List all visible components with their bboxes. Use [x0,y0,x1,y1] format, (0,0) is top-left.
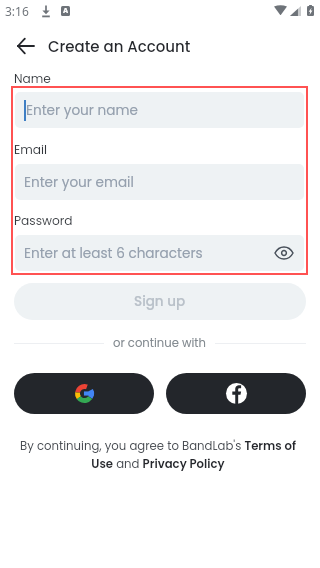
button[interactable]: Show password [270,239,298,267]
staticText: Enter your email [24,173,134,192]
staticText: Password [14,212,73,229]
button[interactable]: Continue with Facebook [166,373,306,414]
staticText: By continuing, you agree to BandLab's Te… [19,438,297,473]
button[interactable]: Sign up [14,283,306,320]
staticText: Name [14,70,51,87]
button[interactable]: Enter your email [15,164,304,200]
staticText: A [63,6,69,16]
staticText: Create an Account [48,36,191,57]
staticText: 3:16 [5,3,29,19]
staticText: Enter at least 6 characters [24,244,203,263]
staticText: Enter your name [26,101,138,120]
button[interactable]: Continue with Google [14,373,154,414]
button[interactable]: Enter your name [15,92,304,128]
staticText: or continue with [113,335,206,351]
button[interactable]: Back [9,30,41,62]
staticText: Sign up [134,292,186,311]
button[interactable]: Enter at least 6 characters [15,235,304,271]
staticText: Email [14,141,48,158]
